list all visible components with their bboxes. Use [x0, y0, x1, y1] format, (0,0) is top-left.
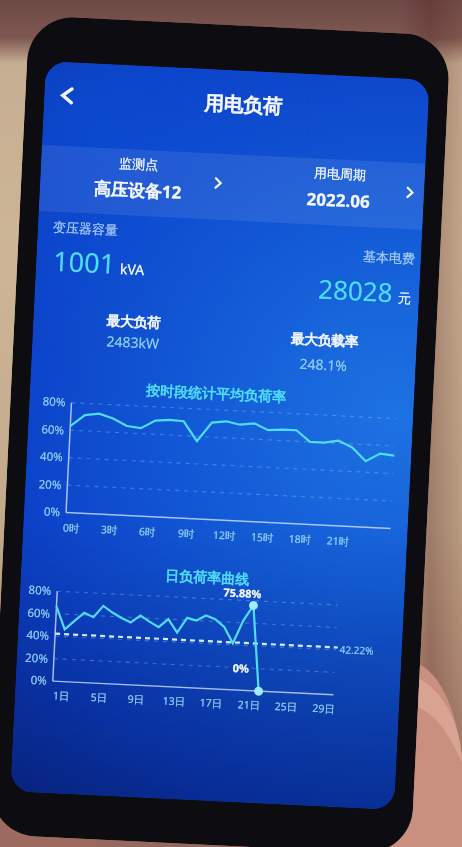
staticText: 20% — [25, 476, 62, 493]
staticText: 9日 — [116, 691, 156, 707]
staticText: 0时 — [51, 520, 92, 536]
staticText: 29日 — [303, 700, 344, 716]
staticText: 3时 — [89, 522, 129, 538]
staticText: 0% — [24, 502, 60, 520]
staticText: 40% — [26, 448, 63, 465]
staticText: 20% — [16, 649, 48, 667]
staticText: 17日 — [191, 695, 231, 711]
button[interactable]: 监测点 — [39, 151, 233, 206]
staticText: kVA — [120, 259, 145, 279]
staticText: 21日 — [229, 697, 269, 713]
staticText: 15时 — [242, 529, 282, 545]
staticText: 用电周期 — [314, 164, 366, 183]
staticText: 12时 — [204, 527, 244, 543]
staticText: 80% — [20, 581, 52, 599]
staticText: 0% — [15, 671, 47, 689]
staticText: 1日 — [41, 688, 81, 703]
staticText: 42.22% — [339, 642, 374, 658]
staticText: 75.88% — [223, 584, 263, 601]
staticText: 248.1% — [299, 354, 348, 375]
staticText: 高压设备12 — [93, 177, 182, 204]
button[interactable]: Back — [43, 71, 90, 119]
staticText: 按时段统计平均负荷率 — [30, 377, 408, 413]
staticText: 最大负载率 — [290, 330, 359, 351]
staticText: 28028 — [317, 271, 394, 309]
staticText: 最大负荷 — [106, 312, 161, 332]
staticText: 80% — [29, 393, 66, 410]
button[interactable]: 用电周期 — [231, 160, 425, 216]
staticText: 18时 — [280, 531, 320, 547]
staticText: 2483kW — [106, 331, 160, 353]
staticText: 2022.06 — [306, 187, 371, 213]
staticText: 21时 — [318, 533, 358, 549]
staticText: 6时 — [127, 524, 167, 539]
staticText: 9时 — [166, 525, 206, 541]
staticText: 变压器容量 — [53, 219, 118, 238]
staticText: 元 — [398, 289, 411, 306]
staticText: 60% — [28, 421, 64, 438]
staticText: 60% — [19, 604, 50, 622]
staticText: 用电负荷 — [51, 83, 429, 127]
staticText: 监测点 — [119, 155, 158, 173]
staticText: 日负荷率曲线 — [21, 560, 399, 597]
staticText: 5日 — [79, 689, 119, 705]
staticText: 0% — [232, 660, 250, 676]
staticText: 25日 — [265, 699, 306, 714]
staticText: 40% — [18, 626, 49, 644]
staticText: 1001 — [52, 242, 116, 282]
staticText: 基本电费 — [363, 248, 415, 266]
staticText: 13日 — [154, 693, 194, 709]
